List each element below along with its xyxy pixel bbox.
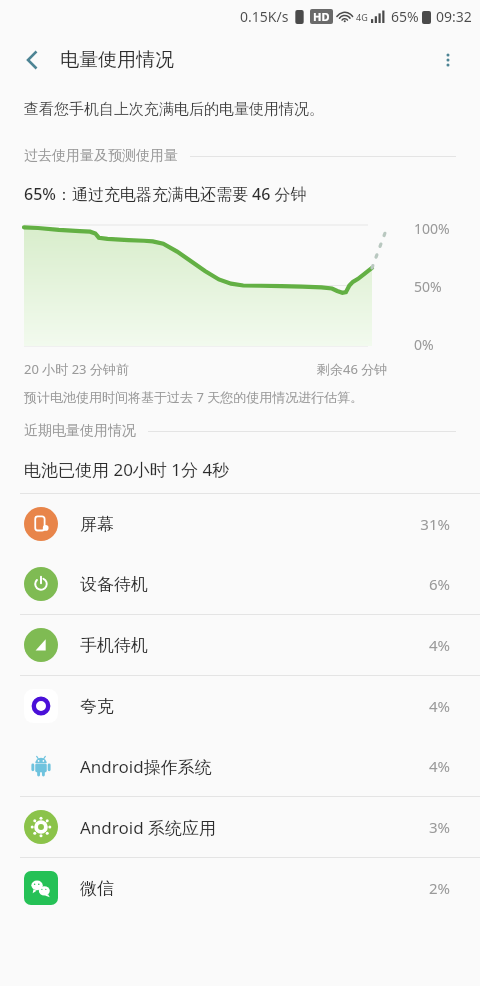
button[interactable]: 屏幕	[0, 494, 480, 554]
staticText: 31%	[420, 514, 450, 534]
staticText: Android 系统应用	[80, 816, 217, 839]
staticText: 50%	[414, 277, 442, 296]
button[interactable]: 设备待机	[0, 554, 480, 614]
button[interactable]: 微信	[0, 858, 480, 918]
staticText: 4G	[356, 11, 368, 23]
staticText: 3%	[428, 817, 450, 837]
staticText: 手机待机	[80, 635, 148, 656]
button[interactable]: 手机待机	[0, 615, 480, 675]
button[interactable]: Android操作系统	[0, 736, 480, 796]
button[interactable]: Back	[8, 36, 56, 84]
staticText: 电池已使用 20小时 1分 4秒	[24, 458, 230, 481]
staticText: 微信	[80, 878, 114, 899]
staticText: 09:32	[436, 7, 472, 26]
staticText: 屏幕	[80, 514, 114, 535]
staticText: 夸克	[80, 696, 114, 717]
staticText: 0.15K/s	[240, 7, 289, 26]
button[interactable]: Android 系统应用	[0, 797, 480, 857]
staticText: Android操作系统	[80, 755, 212, 778]
staticText: 0%	[414, 335, 434, 354]
staticText: HD	[313, 9, 330, 24]
staticText: 65%：通过充电器充满电还需要 46 分钟	[24, 183, 307, 205]
staticText: 电量使用情况	[60, 48, 174, 72]
staticText: 6%	[428, 574, 450, 594]
staticText: 65%	[391, 7, 419, 26]
button[interactable]: 夸克	[0, 676, 480, 736]
staticText: 预计电池使用时间将基于过去 7 天您的使用情况进行估算。	[24, 388, 364, 406]
staticText: 设备待机	[80, 574, 148, 595]
staticText: 剩余46 分钟	[317, 360, 388, 378]
staticText: 4%	[428, 756, 450, 776]
staticText: 4%	[428, 696, 450, 716]
staticText: 查看您手机自上次充满电后的电量使用情况。	[24, 100, 324, 119]
staticText: 近期电量使用情况	[24, 422, 136, 440]
button[interactable]: More options	[424, 36, 472, 84]
staticText: 20 小时 23 分钟前	[24, 360, 129, 378]
staticText: 4%	[428, 635, 450, 655]
staticText: 100%	[414, 219, 450, 238]
staticText: 2%	[428, 878, 450, 898]
staticText: 过去使用量及预测使用量	[24, 147, 178, 165]
